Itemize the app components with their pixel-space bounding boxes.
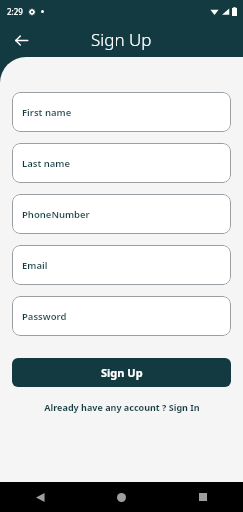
button[interactable]: PhoneNumber <box>12 194 231 234</box>
staticText: 2:29 <box>7 6 23 17</box>
button[interactable]: Already have any account ? Sign In <box>12 401 231 413</box>
button[interactable]: Back <box>6 25 36 55</box>
staticText: Already have any account ? Sign In <box>44 401 200 413</box>
staticText: Password <box>22 310 67 323</box>
button[interactable]: Password <box>12 296 231 336</box>
button[interactable]: Home <box>81 482 162 512</box>
staticText: Last name <box>22 157 71 170</box>
button[interactable]: Email <box>12 245 231 285</box>
staticText: PhoneNumber <box>22 208 90 221</box>
button[interactable]: Last name <box>12 143 231 183</box>
staticText: Sign Up <box>91 28 152 51</box>
button[interactable]: First name <box>12 92 231 132</box>
staticText: Sign Up <box>101 365 143 380</box>
staticText: Email <box>22 259 48 272</box>
staticText: First name <box>22 106 72 119</box>
button[interactable]: Back <box>0 482 81 512</box>
button[interactable]: Recent apps <box>162 482 243 512</box>
button[interactable]: Sign Up <box>12 358 231 387</box>
